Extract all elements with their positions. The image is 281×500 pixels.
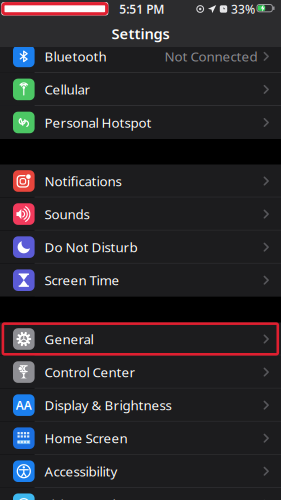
staticText: Display & Brightness	[44, 396, 171, 414]
button[interactable]: Accessibility	[0, 455, 281, 488]
staticText: Bluetooth	[44, 47, 106, 65]
staticText: Not Connected	[164, 47, 257, 65]
button[interactable]: Home Screen	[0, 422, 281, 455]
button[interactable]: AA	[0, 389, 281, 422]
staticText: Settings	[111, 24, 169, 43]
staticText: Control Center	[44, 363, 135, 381]
staticText: Home Screen	[44, 429, 127, 447]
staticText: Do Not Disturb	[44, 238, 137, 256]
staticText: General	[44, 330, 93, 348]
staticText: Personal Hotspot	[44, 114, 151, 131]
staticText: AA	[16, 397, 32, 413]
staticText: Cellular	[44, 81, 90, 98]
button[interactable]: Personal Hotspot	[0, 106, 281, 139]
button[interactable]: Cellular	[0, 73, 281, 106]
button[interactable]: Screen Time	[0, 264, 281, 297]
staticText: 33%	[231, 1, 255, 17]
button[interactable]: General	[0, 322, 281, 355]
button[interactable]: Bluetooth	[0, 40, 281, 73]
staticText: Screen Time	[44, 271, 119, 289]
button[interactable]: Do Not Disturb	[0, 231, 281, 264]
button[interactable]: Control Center	[0, 356, 281, 389]
button[interactable]: Siri & Search	[0, 488, 281, 500]
staticText: Notifications	[44, 172, 121, 190]
staticText: 5:51 PM	[119, 1, 164, 17]
button[interactable]: Notifications	[0, 164, 281, 197]
staticText: Accessibility	[44, 462, 117, 480]
staticText: Sounds	[44, 205, 89, 223]
button[interactable]: Sounds	[0, 198, 281, 231]
staticText: Siri & Search	[44, 495, 120, 500]
